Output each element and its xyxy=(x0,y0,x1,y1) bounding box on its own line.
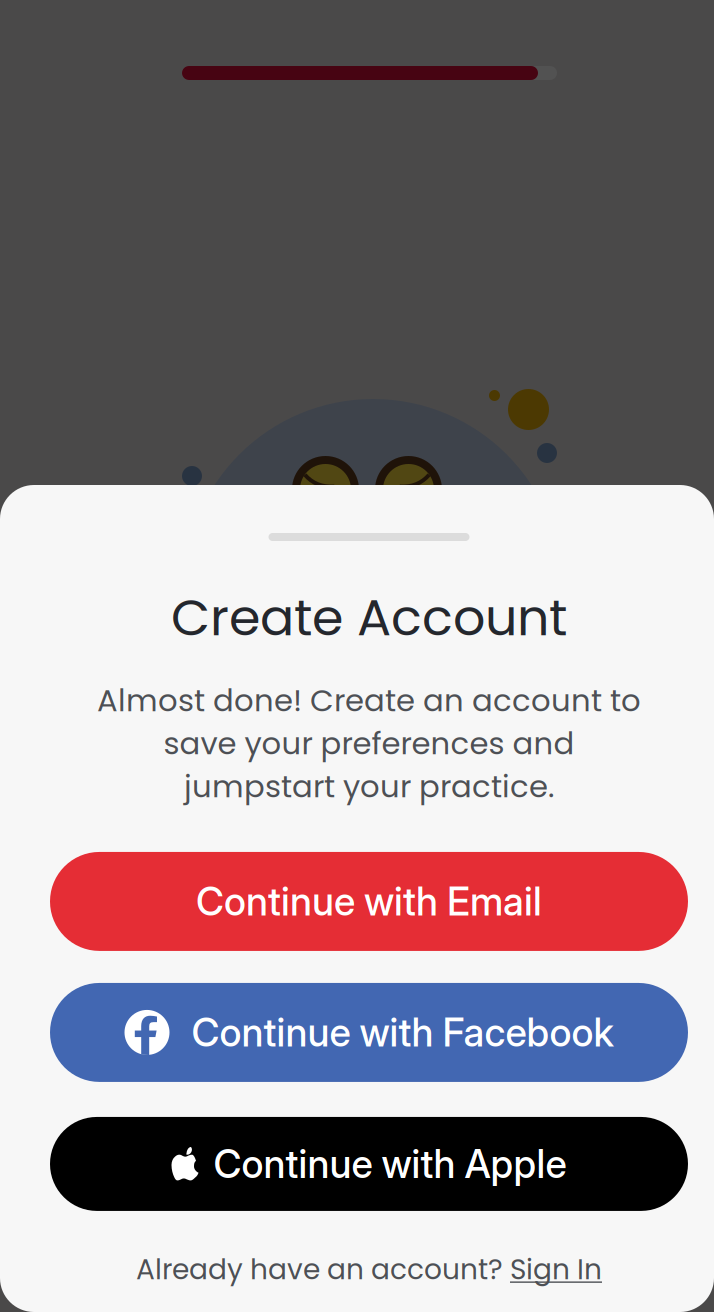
button[interactable]: Continue with Facebook xyxy=(50,983,688,1082)
button[interactable]: Already have an account? Sign In xyxy=(136,1211,602,1289)
button[interactable]: Continue with Email xyxy=(50,852,688,951)
staticText: Continue with Facebook xyxy=(191,1009,613,1056)
staticText: Continue with Apple xyxy=(213,1140,566,1187)
staticText: jumpstart your practice. xyxy=(184,765,554,808)
staticText: Create Account xyxy=(171,582,567,653)
button[interactable]: Continue with Apple xyxy=(50,1117,688,1211)
staticText: Already have an account? Sign In xyxy=(136,1250,602,1289)
staticText: Almost done! Create an account to xyxy=(97,679,641,722)
staticText: save your preferences and xyxy=(163,722,574,765)
staticText: Continue with Email xyxy=(196,878,542,925)
